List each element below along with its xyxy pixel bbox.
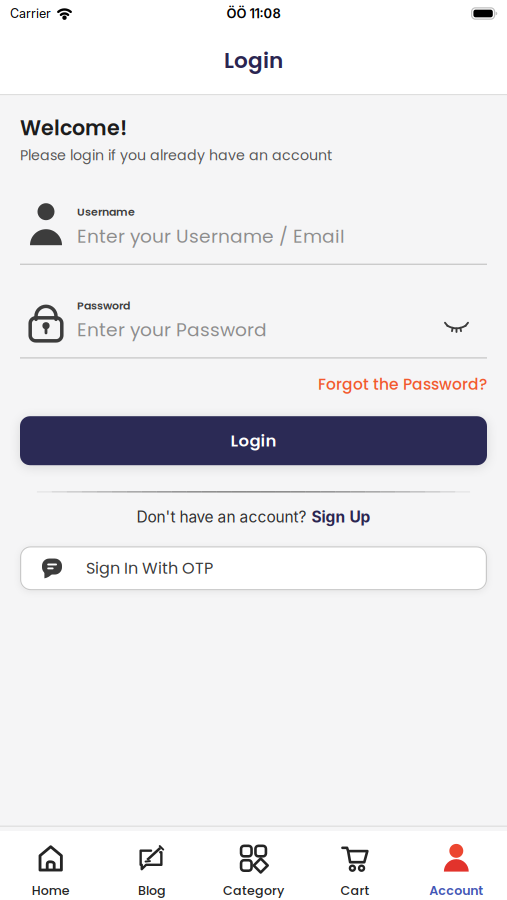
staticText: ÖÖ 11:08	[226, 6, 280, 21]
button[interactable]	[444, 320, 469, 334]
button[interactable]: Home	[0, 840, 101, 897]
staticText: Forgot the Password?	[318, 373, 487, 395]
button[interactable]: Account	[406, 840, 507, 897]
staticText: Username	[77, 204, 135, 220]
button[interactable]: Forgot the Password?	[318, 373, 487, 395]
button[interactable]: Cart	[304, 840, 406, 897]
staticText: Account	[429, 882, 483, 899]
button[interactable]: Blog	[101, 840, 203, 897]
staticText: Login	[224, 45, 283, 76]
staticText: Please login if you already have an acco…	[20, 145, 332, 165]
button[interactable]: Sign In With OTP	[20, 546, 487, 590]
staticText: Cart	[340, 882, 369, 899]
staticText: Enter your Password	[77, 317, 267, 343]
staticText: Sign Up	[311, 507, 370, 526]
staticText: Sign In With OTP	[86, 557, 213, 579]
staticText: Login	[230, 429, 276, 452]
staticText: Password	[77, 298, 130, 313]
staticText: Home	[32, 882, 70, 899]
button[interactable]: Don't have an account?	[136, 507, 370, 526]
button[interactable]: Category	[203, 840, 304, 897]
staticText: Welcome!	[20, 113, 127, 142]
staticText: Don't have an account?	[136, 507, 306, 526]
staticText: Enter your Username / Email	[77, 223, 345, 249]
staticText: Carrier	[10, 6, 51, 21]
button[interactable]: Login	[20, 416, 487, 465]
staticText: Category	[223, 882, 284, 899]
staticText: Blog	[138, 882, 166, 899]
